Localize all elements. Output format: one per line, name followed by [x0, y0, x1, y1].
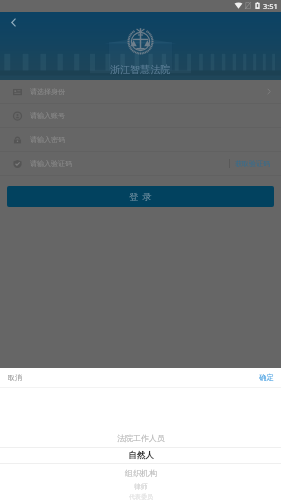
staticText: 请输入验证码	[30, 159, 72, 168]
staticText: 代表委员	[129, 493, 153, 500]
button[interactable]: 登 录	[7, 186, 274, 207]
staticText: 取消	[8, 373, 22, 382]
staticText: 确定	[259, 373, 274, 382]
staticText: 法院工作人员	[117, 433, 165, 443]
button[interactable]: 请输入验证码	[0, 152, 281, 175]
staticText: 获取验证码	[235, 159, 270, 168]
button[interactable]: 律师	[0, 482, 281, 491]
staticText: 组织机构	[125, 468, 157, 478]
button[interactable]: 法院工作人员	[0, 433, 281, 443]
button[interactable]: 获取验证码	[234, 159, 271, 168]
staticText: 登 录	[129, 190, 153, 203]
button[interactable]: 组织机构	[0, 468, 281, 478]
staticText: 浙江智慧法院	[110, 63, 171, 76]
staticText: 请选择身份	[30, 87, 65, 96]
button[interactable]: 取消	[0, 369, 30, 386]
staticText: 律师	[134, 482, 148, 491]
button[interactable]: 代表委员	[0, 493, 281, 500]
button[interactable]: 确定	[252, 369, 281, 386]
staticText: 请输入账号	[30, 111, 65, 120]
button[interactable]: Back	[3, 12, 24, 33]
button[interactable]: 请选择身份	[0, 80, 281, 103]
button[interactable]: 请输入密码	[0, 128, 281, 151]
button[interactable]: 自然人	[0, 450, 281, 461]
staticText: 自然人	[128, 450, 154, 461]
staticText: 3:51	[263, 1, 278, 11]
staticText: 请输入密码	[30, 135, 65, 144]
